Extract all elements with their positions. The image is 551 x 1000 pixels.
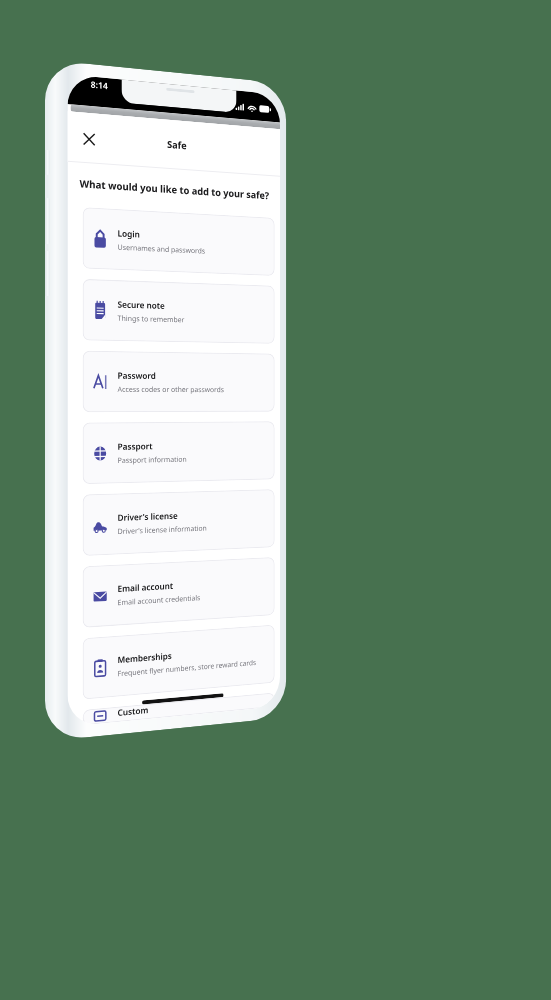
staticText: Custom: [117, 704, 149, 718]
staticText: Things to remember: [117, 313, 185, 324]
button[interactable]: Secure note: [83, 279, 275, 344]
staticText: 8:14: [91, 78, 109, 92]
staticText: Passport information: [117, 454, 187, 465]
staticText: Login: [117, 227, 140, 240]
staticText: Access codes or other passwords: [117, 384, 224, 394]
button[interactable]: Custom: [83, 692, 275, 725]
staticText: Email account: [117, 580, 174, 594]
button[interactable]: Password: [83, 351, 275, 412]
staticText: Driver's license information: [117, 523, 207, 536]
staticText: Frequent flyer numbers, store reward car…: [117, 657, 257, 678]
button[interactable]: Passport: [83, 421, 275, 484]
button[interactable]: Memberships: [83, 625, 275, 700]
staticText: Driver's license: [117, 510, 178, 523]
staticText: Email account credentials: [117, 592, 200, 607]
button[interactable]: Email account: [83, 557, 275, 628]
button[interactable]: Login: [83, 207, 275, 276]
staticText: Safe: [167, 138, 187, 152]
staticText: Usernames and passwords: [117, 241, 206, 256]
staticText: Passport: [117, 440, 153, 452]
staticText: Memberships: [117, 650, 172, 665]
button[interactable]: Close: [77, 125, 101, 152]
staticText: Password: [117, 369, 156, 381]
staticText: What would you like to add to your safe?: [80, 177, 269, 202]
button[interactable]: Driver's license: [83, 489, 275, 556]
staticText: Anything else: [117, 717, 162, 722]
staticText: Secure note: [117, 298, 165, 311]
